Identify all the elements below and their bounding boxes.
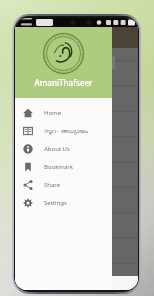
staticText: സൂറ - അധ്യായം <box>44 127 89 135</box>
staticText: Share <box>44 181 61 189</box>
button[interactable]: സൂറ - അധ്യായം <box>15 122 112 140</box>
staticText: AmaniThafseer <box>15 77 112 88</box>
other: Settings <box>23 198 33 208</box>
other: About Us <box>23 144 33 154</box>
other: Bookmark <box>23 162 33 172</box>
button[interactable]: Home <box>15 104 112 122</box>
button[interactable]: Settings <box>15 194 112 212</box>
button[interactable]: About Us <box>15 140 112 158</box>
staticText: Settings <box>44 199 67 207</box>
other: സൂറ - അധ്യായം <box>23 126 33 136</box>
other: Share <box>23 180 33 190</box>
button[interactable]: Bookmark <box>15 158 112 176</box>
other: Home <box>23 108 33 118</box>
staticText: Bookmark <box>44 163 74 171</box>
button[interactable]: Share <box>15 176 112 194</box>
staticText: About Us <box>44 145 70 153</box>
staticText: Home <box>44 109 62 117</box>
